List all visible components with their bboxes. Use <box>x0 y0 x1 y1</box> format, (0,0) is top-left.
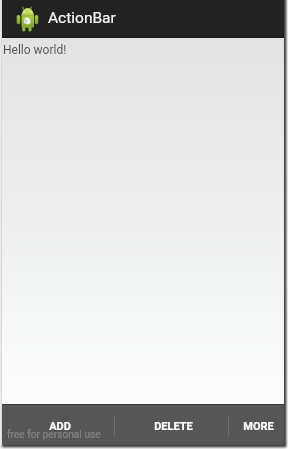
other: App icon <box>16 6 39 32</box>
button[interactable]: DELETE <box>115 405 228 445</box>
staticText: free for personal use <box>7 429 101 441</box>
staticText: DELETE <box>154 420 193 433</box>
button[interactable]: MORE <box>229 405 284 445</box>
staticText: ActionBar <box>48 9 116 27</box>
staticText: Hello world! <box>3 43 67 57</box>
staticText: MORE <box>243 420 274 433</box>
staticText: ADD <box>49 420 71 433</box>
button[interactable]: ADD <box>2 405 114 445</box>
